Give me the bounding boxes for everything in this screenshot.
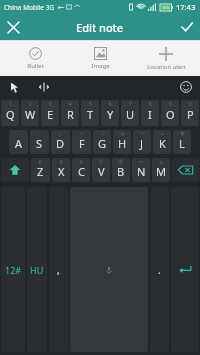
staticText: D bbox=[56, 136, 65, 151]
button[interactable]: 8 bbox=[141, 100, 159, 126]
button[interactable]: € bbox=[72, 158, 90, 182]
staticText: ~ bbox=[17, 131, 20, 137]
button[interactable]: ™ bbox=[132, 158, 150, 182]
staticText: T bbox=[87, 107, 94, 122]
button[interactable]: , bbox=[49, 187, 68, 352]
button[interactable]: Backspace bbox=[172, 158, 199, 182]
button[interactable]: 4 bbox=[61, 100, 79, 126]
button[interactable]: ¥ bbox=[52, 158, 70, 182]
button[interactable]: 3 bbox=[41, 100, 59, 126]
button[interactable]: 9 bbox=[161, 100, 179, 126]
staticText: ¶ bbox=[181, 131, 184, 137]
button[interactable]: • bbox=[72, 130, 91, 154]
staticText: A bbox=[15, 136, 23, 151]
button[interactable]: . bbox=[150, 187, 169, 352]
staticText: Y bbox=[107, 107, 114, 122]
staticText: S bbox=[36, 136, 43, 151]
staticText: ™ bbox=[139, 159, 143, 165]
staticText: H bbox=[118, 136, 127, 151]
staticText: 2 bbox=[29, 101, 32, 107]
staticText: 0 bbox=[189, 101, 192, 107]
button[interactable]: √ bbox=[93, 130, 111, 154]
staticText: F bbox=[79, 136, 85, 151]
button[interactable]: 12# bbox=[1, 187, 25, 352]
button[interactable]: 0 bbox=[181, 100, 199, 126]
staticText: G bbox=[98, 136, 107, 151]
staticText: 12# bbox=[5, 264, 22, 276]
staticText: 1 bbox=[9, 101, 12, 107]
staticText: J bbox=[140, 136, 144, 151]
staticText: U bbox=[126, 107, 135, 122]
button[interactable]: HU bbox=[27, 187, 47, 352]
button[interactable]: π bbox=[113, 130, 131, 154]
staticText: Q bbox=[6, 107, 15, 122]
staticText: 4 bbox=[69, 101, 72, 107]
button[interactable]: 7 bbox=[121, 100, 139, 126]
staticText: Z bbox=[37, 164, 44, 179]
staticText: HU bbox=[30, 264, 44, 276]
button[interactable]: × bbox=[153, 130, 171, 154]
button[interactable]: Bullet bbox=[4, 41, 66, 76]
button[interactable]: ¶ bbox=[173, 130, 191, 154]
staticText: M bbox=[156, 164, 166, 179]
staticText: X bbox=[58, 164, 65, 179]
staticText: 9 bbox=[169, 101, 172, 107]
button[interactable]: © bbox=[92, 158, 110, 182]
button[interactable]: 2 bbox=[21, 100, 39, 126]
button[interactable]: Save note bbox=[174, 14, 200, 40]
staticText: ` bbox=[39, 131, 41, 137]
button[interactable]: ~ bbox=[9, 130, 28, 154]
staticText: Image bbox=[91, 62, 110, 70]
button[interactable]: Emoji bbox=[178, 79, 194, 95]
staticText: Edit note bbox=[76, 20, 124, 35]
staticText: K bbox=[159, 136, 166, 151]
button[interactable]: | bbox=[51, 130, 70, 154]
staticText: N bbox=[137, 164, 146, 179]
button[interactable]: ℅ bbox=[152, 158, 170, 182]
staticText: B bbox=[117, 164, 125, 179]
staticText: R bbox=[67, 107, 74, 122]
button[interactable]: Enter bbox=[171, 187, 199, 352]
staticText: ¥ bbox=[60, 159, 63, 165]
staticText: ÷ bbox=[141, 131, 144, 137]
staticText: W bbox=[25, 107, 36, 122]
staticText: C bbox=[78, 164, 85, 179]
button[interactable]: Shift bbox=[1, 158, 29, 182]
button[interactable]: Move cursor bbox=[36, 79, 52, 95]
button[interactable]: 1 bbox=[1, 100, 19, 126]
staticText: Location alert bbox=[147, 63, 186, 71]
staticText: China Mobile 3G bbox=[4, 3, 55, 12]
staticText: L bbox=[179, 136, 185, 151]
staticText: ® bbox=[119, 159, 123, 165]
staticText: Bullet bbox=[27, 62, 44, 70]
staticText: 5 bbox=[89, 101, 92, 107]
button[interactable]: ` bbox=[30, 130, 49, 154]
staticText: E bbox=[47, 107, 54, 122]
staticText: £ bbox=[39, 159, 42, 165]
button[interactable]: Handwriting bbox=[6, 79, 22, 95]
staticText: V bbox=[98, 164, 105, 179]
staticText: © bbox=[99, 159, 103, 165]
staticText: √ bbox=[101, 131, 104, 136]
button[interactable]: Close bbox=[0, 14, 26, 40]
staticText: • bbox=[81, 131, 83, 137]
button[interactable]: Location alert bbox=[135, 41, 197, 76]
staticText: × bbox=[161, 131, 164, 137]
staticText: . bbox=[158, 263, 161, 277]
staticText: ℅ bbox=[159, 159, 163, 165]
staticText: , bbox=[57, 263, 60, 277]
button[interactable]: Image bbox=[69, 41, 131, 76]
button[interactable]: ÷ bbox=[133, 130, 151, 154]
button[interactable]: ® bbox=[112, 158, 130, 182]
staticText: π bbox=[121, 131, 124, 137]
button[interactable]: £ bbox=[31, 158, 50, 182]
staticText: | bbox=[59, 131, 62, 137]
button[interactable]: 6 bbox=[101, 100, 119, 126]
staticText: € bbox=[80, 159, 83, 165]
staticText: 17:43 bbox=[176, 2, 196, 12]
staticText: P bbox=[187, 107, 194, 122]
staticText: 8 bbox=[149, 101, 152, 107]
staticText: 3 bbox=[49, 101, 52, 107]
button[interactable]: 5 bbox=[81, 100, 99, 126]
